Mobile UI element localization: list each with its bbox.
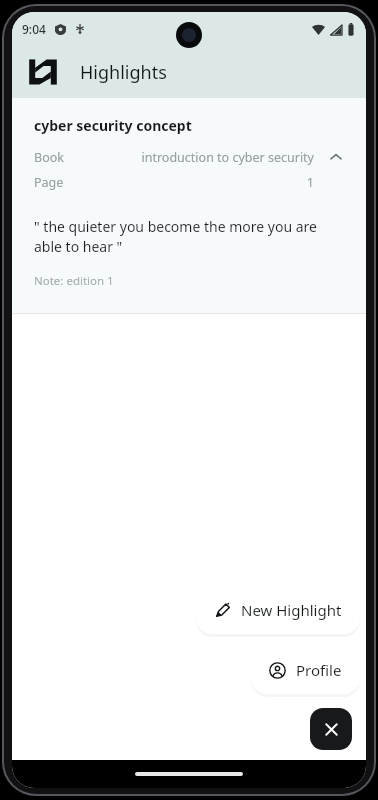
staticText: New Highlight: [241, 600, 342, 620]
staticText: 1: [64, 174, 314, 191]
staticText: Book: [34, 149, 64, 166]
button[interactable]: Collapse: [326, 147, 346, 167]
staticText: " the quieter you become the more you ar…: [34, 217, 346, 257]
staticText: cyber security concept: [34, 116, 192, 135]
staticText: New Highlight: [241, 603, 342, 623]
button[interactable]: cyber security concept: [12, 98, 366, 313]
button[interactable]: New Highlight: [196, 586, 360, 634]
staticText: Profile: [296, 660, 342, 680]
staticText: Page: [34, 174, 64, 191]
staticText: Highlights: [80, 60, 167, 85]
staticText: Profile: [296, 663, 342, 683]
staticText: Note: edition 1: [34, 273, 114, 289]
staticText: 9:04: [22, 21, 46, 37]
staticText: introduction to cyber security: [64, 149, 314, 166]
button[interactable]: Close menu: [310, 708, 352, 750]
button[interactable]: Profile: [251, 646, 360, 694]
other: App logo: [28, 57, 58, 87]
